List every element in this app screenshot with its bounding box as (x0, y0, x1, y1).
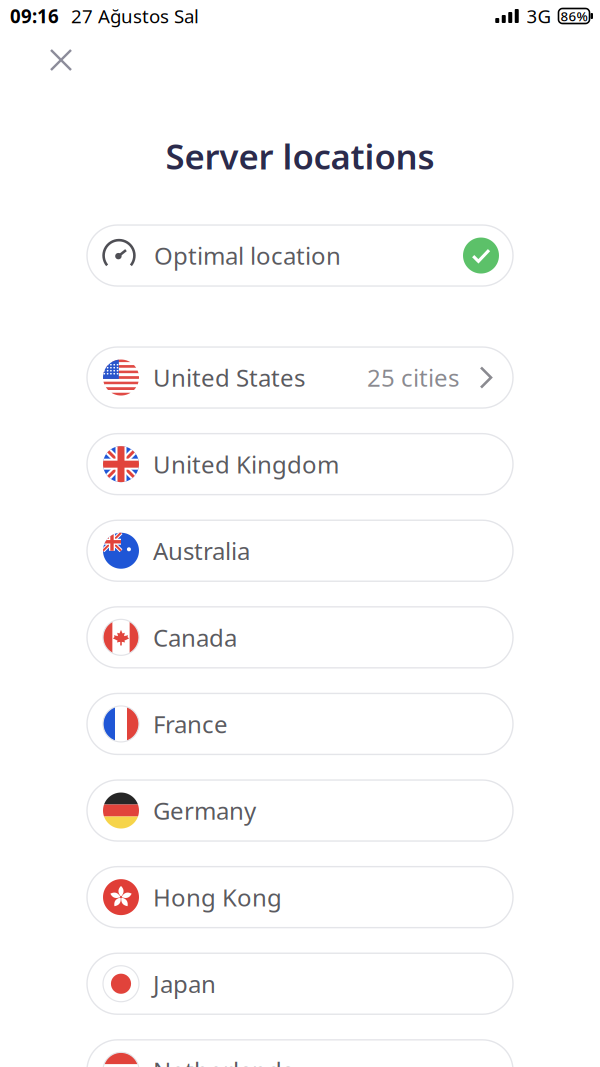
button[interactable]: France (87, 693, 513, 754)
staticText: United States (153, 362, 305, 393)
staticText: Netherlands (153, 1054, 293, 1067)
button[interactable]: Canada (87, 607, 513, 668)
button[interactable]: Optimal location (87, 225, 513, 286)
button[interactable]: Close (39, 38, 83, 82)
button[interactable]: United Kingdom (87, 434, 513, 495)
button[interactable]: United States (87, 347, 513, 408)
button[interactable]: Hong Kong (87, 867, 513, 928)
staticText: France (153, 708, 228, 740)
staticText: 3G (526, 4, 551, 28)
staticText: Canada (153, 621, 237, 653)
staticText: 27 Ağustos Sal (71, 4, 199, 28)
staticText: 25 cities (367, 362, 459, 393)
staticText: 09:16 (10, 4, 59, 28)
button[interactable]: Netherlands (87, 1040, 513, 1067)
staticText: 86% (560, 7, 587, 25)
staticText: Server locations (165, 133, 434, 179)
staticText: Japan (153, 968, 216, 1000)
button[interactable]: Germany (87, 780, 513, 841)
staticText: Optimal location (154, 240, 341, 271)
staticText: Hong Kong (153, 881, 282, 913)
staticText: Germany (153, 795, 256, 826)
button[interactable]: Japan (87, 953, 513, 1014)
staticText: United Kingdom (153, 448, 339, 480)
button[interactable]: Australia (87, 520, 513, 581)
staticText: Australia (153, 535, 250, 567)
